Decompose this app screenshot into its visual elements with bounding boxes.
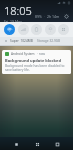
staticText: · — [44, 14, 45, 19]
staticText: Fri, 19 May — [4, 19, 22, 22]
button[interactable]: Super 1024MB — [4, 39, 69, 43]
staticText: 89% — [35, 14, 42, 19]
staticText: Android System — [11, 52, 35, 56]
staticText: · now — [37, 52, 46, 56]
staticText: 18:05 — [4, 3, 32, 18]
staticText: Storage 32.9GB — [37, 39, 61, 43]
button[interactable]: Android System — [2, 50, 71, 74]
button[interactable]: Battery saver — [31, 24, 42, 35]
staticText: 2h 14m — [47, 14, 60, 19]
staticText: Background update blocked — [5, 58, 61, 63]
button[interactable]: Back — [10, 138, 22, 150]
button[interactable]: More tiles — [58, 24, 69, 35]
staticText: Background mode has been disabled to sav… — [5, 64, 68, 72]
button[interactable]: Home — [31, 138, 43, 150]
staticText: Super 1024MB — [10, 39, 33, 43]
button[interactable]: Recents — [51, 138, 63, 150]
button[interactable]: Do not disturb — [45, 24, 56, 35]
button[interactable]: Wi-Fi — [4, 24, 15, 35]
button[interactable]: Mobile data — [18, 24, 29, 35]
button[interactable]: Settings — [63, 13, 70, 20]
